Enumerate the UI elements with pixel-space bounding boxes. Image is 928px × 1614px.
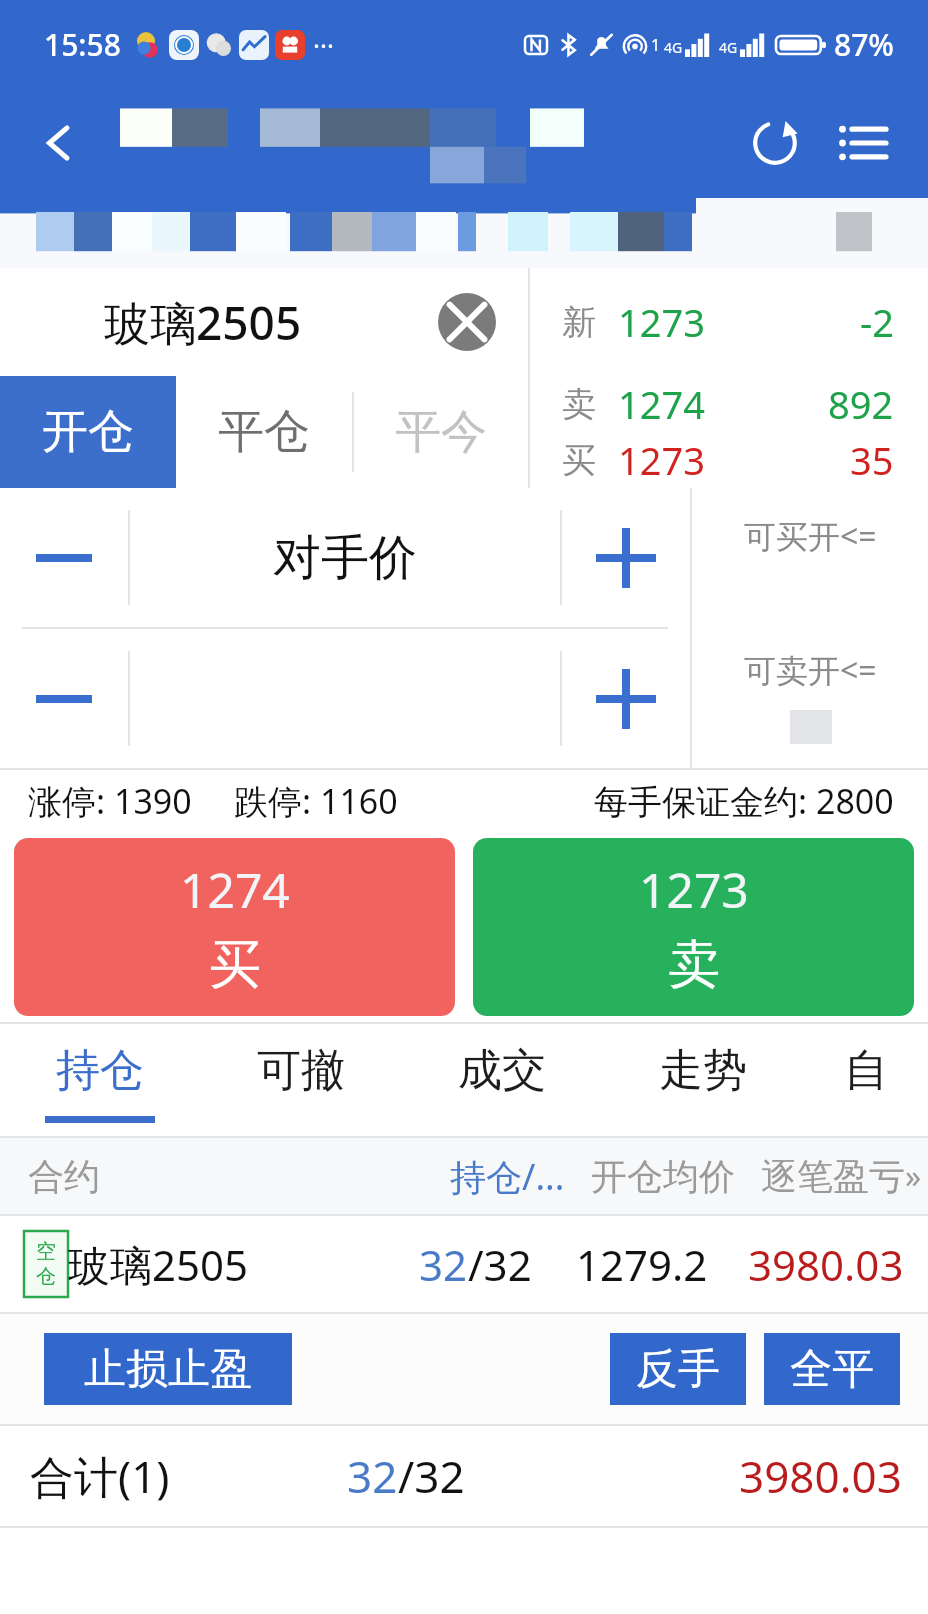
button[interactable]: Clear — [432, 287, 502, 357]
staticText: 35 — [850, 434, 894, 486]
staticText: 合计(1) — [30, 1446, 170, 1506]
button[interactable]: 玻璃2505 — [0, 268, 528, 376]
staticText: 32 — [347, 1446, 398, 1506]
staticText: 87% — [834, 24, 894, 65]
button[interactable]: 全平 — [764, 1333, 900, 1405]
staticText: /32 — [468, 1236, 532, 1293]
button[interactable]: 成交 — [401, 1024, 602, 1136]
staticText: 对手价 — [273, 528, 417, 588]
staticText: 卖 — [562, 383, 596, 426]
staticText: » — [905, 1154, 922, 1198]
staticText: 可买开<= — [744, 514, 877, 558]
button[interactable]: 平今 — [354, 376, 528, 488]
staticText: 3980.03 — [739, 1446, 902, 1506]
staticText: 1273 — [639, 857, 749, 922]
staticText: ··· — [313, 27, 334, 62]
button[interactable]: Refresh — [736, 104, 814, 182]
staticText: 成交 — [458, 1043, 546, 1098]
staticText: 32 — [419, 1236, 468, 1293]
staticText: 买 — [209, 932, 261, 998]
staticText: 4G — [719, 38, 738, 57]
staticText: 止损止盈 — [84, 1343, 252, 1396]
button[interactable]: 走势 — [602, 1024, 803, 1136]
staticText: 每手保证金约: 2800 — [594, 778, 894, 824]
staticText: 反手 — [636, 1343, 720, 1396]
button[interactable]: 开仓 — [0, 376, 176, 488]
staticText: 开仓均价 — [591, 1154, 735, 1199]
staticText: 3980.03 — [748, 1236, 904, 1293]
button[interactable]: 止损止盈 — [44, 1333, 292, 1405]
button[interactable]: 对手价 — [130, 488, 560, 627]
button[interactable]: Menu — [824, 104, 902, 182]
button[interactable]: 可撤 — [200, 1024, 401, 1136]
button[interactable]: 1273 — [473, 838, 914, 1016]
button[interactable]: 反手 — [610, 1333, 746, 1405]
staticText: 持仓 — [56, 1043, 144, 1098]
staticText: 走势 — [659, 1043, 747, 1098]
staticText: 跌停: 1160 — [234, 778, 398, 824]
staticText: 1274 — [180, 857, 290, 922]
staticText: 平今 — [395, 403, 487, 461]
staticText: 玻璃2505 — [104, 291, 302, 354]
staticText: 15:58 — [44, 24, 121, 65]
button[interactable]: Increase — [562, 629, 690, 768]
staticText: 自 — [844, 1043, 888, 1098]
button[interactable]: 持仓 — [0, 1024, 200, 1136]
staticText: 仓 — [36, 1264, 56, 1289]
button[interactable]: 空 — [0, 1216, 928, 1312]
staticText: 892 — [828, 378, 894, 430]
staticText: 1279.2 — [576, 1236, 708, 1293]
staticText: 涨停: 1390 — [28, 778, 192, 824]
staticText: 开仓 — [42, 403, 134, 461]
button[interactable]: Decrease — [0, 629, 128, 768]
staticText: 可卖开<= — [744, 648, 877, 692]
button[interactable]: 平仓 — [176, 376, 352, 488]
staticText: 合约 — [28, 1154, 100, 1199]
button[interactable]: Increase — [562, 488, 690, 627]
staticText: -2 — [860, 296, 894, 348]
staticText: 1273 — [618, 434, 705, 486]
staticText: 买 — [562, 439, 596, 482]
staticText: 玻璃2505 — [68, 1236, 249, 1293]
button[interactable]: 1274 — [14, 838, 455, 1016]
button[interactable]: Back — [26, 110, 92, 176]
staticText: 全平 — [790, 1343, 874, 1396]
staticText: 1273 — [618, 296, 705, 348]
button[interactable]: Decrease — [0, 488, 128, 627]
staticText: 1 — [651, 34, 661, 56]
staticText: 空 — [36, 1239, 56, 1264]
staticText: 卖 — [668, 932, 720, 998]
staticText: 持仓/... — [450, 1152, 565, 1201]
staticText: /32 — [398, 1446, 465, 1506]
staticText: 平仓 — [218, 403, 310, 461]
button[interactable]: 自 — [803, 1024, 928, 1136]
staticText: 逐笔盈亏 — [761, 1154, 905, 1199]
staticText: 1274 — [618, 378, 705, 430]
staticText: 4G — [664, 38, 683, 57]
staticText: 可撤 — [257, 1043, 345, 1098]
staticText: 新 — [562, 301, 596, 344]
